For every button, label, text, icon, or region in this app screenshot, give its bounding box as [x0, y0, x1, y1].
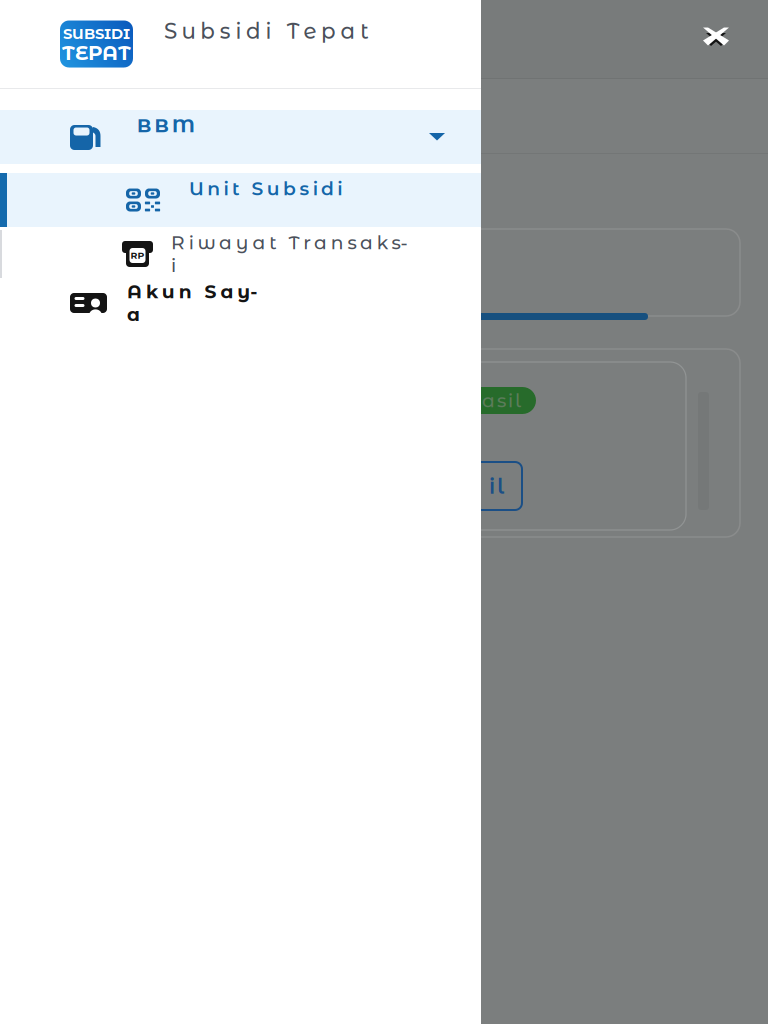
staticText: TEPAT	[62, 41, 131, 65]
staticText: il	[489, 473, 512, 499]
staticText: RP	[130, 250, 144, 261]
staticText: Riwayat Transaksi	[171, 231, 409, 277]
staticText: Akun Saya	[127, 280, 267, 326]
staticText: hasil	[467, 389, 528, 412]
button[interactable]: RP	[0, 230, 481, 278]
button[interactable]: Tutup	[691, 14, 741, 59]
staticText: Unit Subsidi	[189, 177, 342, 223]
button[interactable]: BBM	[0, 110, 481, 164]
staticText: SUBSIDI	[63, 25, 130, 43]
button[interactable]: Unit Subsidi	[0, 173, 481, 227]
button[interactable]: Akun Saya	[0, 278, 481, 328]
staticText: Subsidi Tepat	[164, 18, 368, 70]
staticText: BBM	[137, 114, 195, 160]
